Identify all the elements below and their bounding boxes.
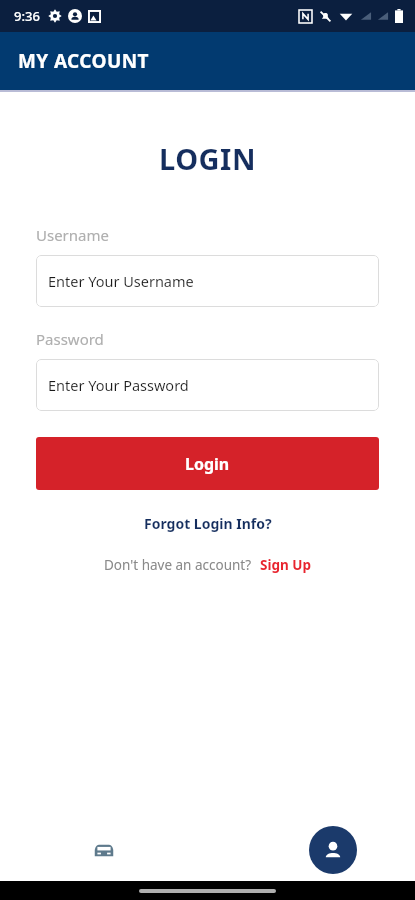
button[interactable]: Forgot Login Info? <box>0 514 415 533</box>
staticText: Enter Your Password <box>48 375 189 395</box>
staticText: Password <box>36 329 104 349</box>
button[interactable]: Enter Your Password <box>36 359 379 411</box>
button[interactable]: My Account <box>309 826 357 874</box>
staticText: Login <box>185 453 230 475</box>
button[interactable]: Sign Up <box>260 556 312 574</box>
staticText: Forgot Login Info? <box>144 514 272 533</box>
staticText: MY ACCOUNT <box>18 48 149 74</box>
staticText: Sign Up <box>260 556 312 574</box>
staticText: Don't have an account? <box>104 556 252 574</box>
button[interactable]: Enter Your Username <box>36 255 379 307</box>
staticText: 9:36 <box>14 7 40 25</box>
staticText: Enter Your Username <box>48 271 194 291</box>
staticText: LOGIN <box>0 139 415 178</box>
staticText: Username <box>36 225 109 245</box>
button[interactable]: Vehicles <box>78 824 130 876</box>
button[interactable]: Login <box>36 437 379 490</box>
